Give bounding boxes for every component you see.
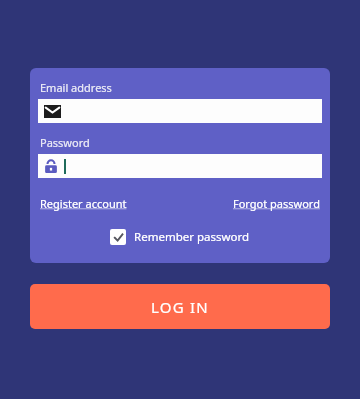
button[interactable]: Email address field bbox=[38, 99, 322, 123]
button[interactable]: Remember password bbox=[106, 225, 254, 249]
staticText: LOG IN bbox=[151, 297, 209, 317]
staticText: Password bbox=[40, 135, 90, 150]
staticText: Email address bbox=[40, 80, 112, 95]
staticText: Remember password bbox=[134, 229, 250, 245]
staticText: Forgot password bbox=[233, 196, 320, 211]
staticText: Register account bbox=[40, 196, 127, 211]
button[interactable]: Register account bbox=[38, 194, 127, 213]
button[interactable]: LOG IN bbox=[30, 284, 330, 329]
button[interactable]: Password field bbox=[38, 154, 322, 178]
button[interactable]: Forgot password bbox=[233, 194, 322, 213]
